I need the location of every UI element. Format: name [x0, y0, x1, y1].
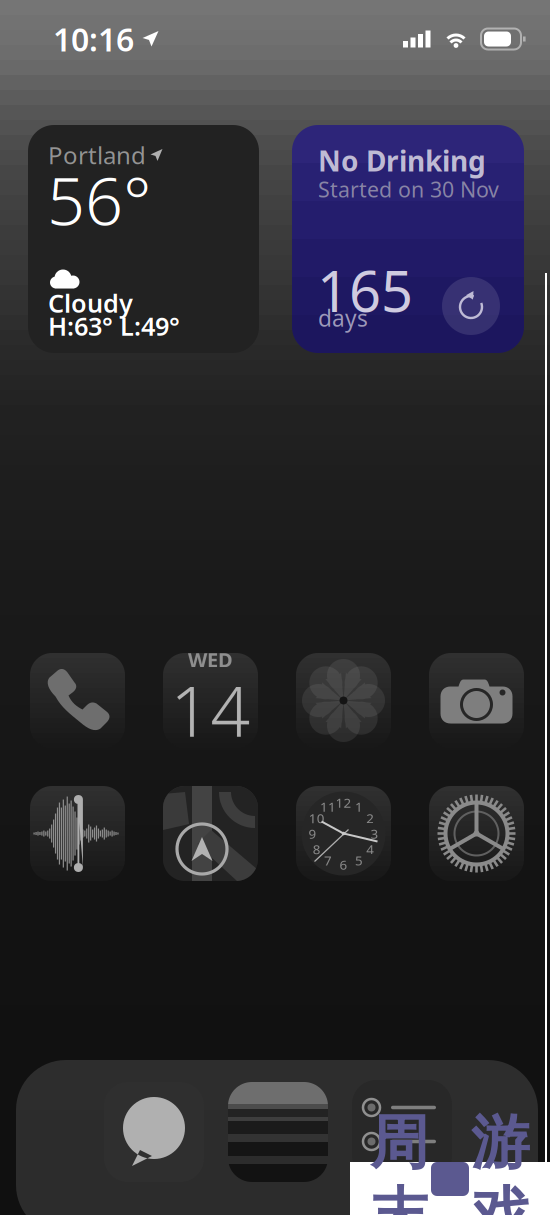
staticText: 14 — [170, 664, 250, 756]
staticText: days — [318, 303, 368, 333]
button[interactable]: Clock — [296, 786, 391, 881]
staticText: 56° — [47, 155, 152, 243]
staticText: 游戏 — [471, 1107, 530, 1215]
staticText: 4 — [366, 840, 374, 858]
staticText: 7 — [324, 851, 332, 869]
staticText: WED — [188, 646, 233, 673]
button[interactable]: Calendar — [163, 653, 258, 748]
button[interactable]: No Drinking — [292, 125, 524, 353]
button[interactable]: Voice Memos — [30, 786, 125, 881]
staticText: 周末 — [370, 1107, 429, 1215]
staticText: Cloudy — [48, 286, 133, 320]
staticText: 3 — [370, 825, 378, 842]
staticText: Portland — [48, 139, 146, 171]
button[interactable]: Settings — [429, 786, 524, 881]
button[interactable]: Messages — [104, 1082, 204, 1182]
staticText: 10 — [309, 809, 325, 827]
button[interactable]: Maps — [163, 786, 258, 881]
staticText: Started on 30 Nov — [318, 175, 499, 203]
button[interactable]: Photos — [296, 653, 391, 748]
button[interactable]: Portland — [28, 125, 259, 353]
button[interactable]: Reminders — [352, 1082, 452, 1182]
staticText: 6 — [339, 856, 347, 873]
staticText: 12 — [335, 794, 351, 811]
staticText: 5 — [355, 851, 363, 869]
button[interactable]: Phone — [30, 653, 125, 748]
button[interactable]: Notes — [228, 1082, 328, 1182]
staticText: No Drinking — [318, 142, 486, 179]
staticText: 2 — [366, 809, 374, 827]
staticText: 10:16 — [53, 18, 134, 60]
staticText: 1 — [355, 798, 363, 815]
staticText: 9 — [308, 825, 316, 842]
button[interactable]: Camera — [429, 653, 524, 748]
staticText: 8 — [313, 840, 321, 858]
staticText: 11 — [320, 798, 336, 815]
staticText: H:63° L:49° — [48, 309, 180, 343]
staticText: 165 — [317, 253, 413, 327]
